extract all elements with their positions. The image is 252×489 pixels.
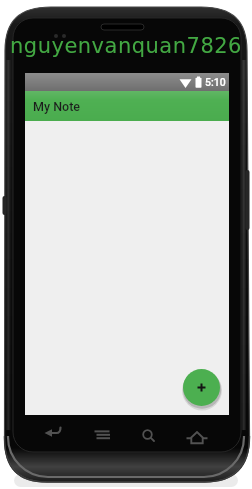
button[interactable]: My Note — [25, 91, 229, 121]
staticText: nguyenvanquan7826 — [10, 34, 242, 58]
button[interactable] — [40, 424, 66, 444]
staticText: 5:10 — [205, 76, 226, 88]
button[interactable] — [183, 369, 220, 406]
button[interactable] — [137, 426, 159, 445]
staticText: My Note — [33, 99, 81, 114]
button[interactable] — [89, 426, 115, 443]
button[interactable] — [182, 427, 211, 447]
